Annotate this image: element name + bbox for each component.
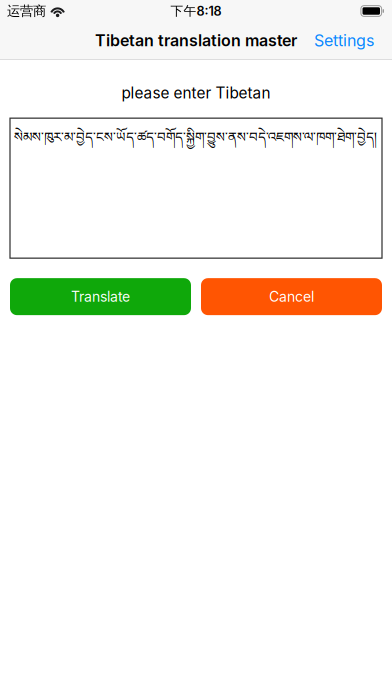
- staticText: please enter Tibetan: [121, 84, 270, 102]
- button[interactable]: Settings: [305, 23, 383, 58]
- staticText: Translate: [71, 288, 130, 305]
- staticText: 下午8:18: [170, 3, 221, 19]
- staticText: 运营商: [7, 3, 46, 19]
- staticText: སེམས་ཁུར་མ་བྱེད་ངས་ཡོད་ཚད་བགོད་སྐྱིག་བྱུ…: [14, 122, 377, 160]
- staticText: Tibetan translation master: [95, 31, 297, 50]
- staticText: Cancel: [269, 288, 314, 305]
- staticText: Settings: [314, 31, 374, 50]
- button[interactable]: Cancel: [201, 278, 382, 315]
- button[interactable]: Translate: [10, 278, 191, 315]
